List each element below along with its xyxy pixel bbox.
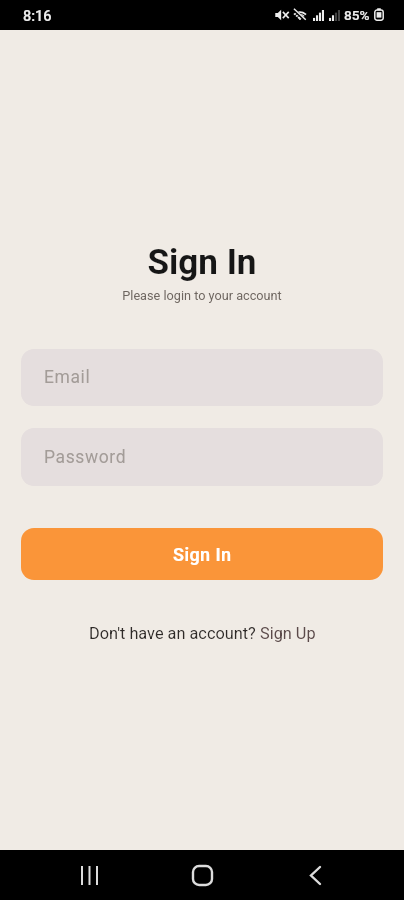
staticText: Please login to your account (0, 288, 404, 303)
staticText: Sign In (0, 242, 404, 283)
button[interactable]: Sign Up (260, 624, 316, 643)
staticText: Email (44, 367, 91, 388)
button[interactable]: Sign In (21, 528, 383, 580)
button[interactable]: Home (178, 851, 226, 899)
button[interactable]: Recent apps (65, 851, 113, 899)
staticText: Don't have an account? (89, 624, 260, 643)
staticText: Sign Up (260, 624, 316, 643)
button[interactable]: Email (21, 349, 383, 406)
button[interactable]: Back (291, 851, 339, 899)
staticText: Sign In (173, 544, 232, 565)
staticText: 85% (344, 7, 370, 23)
button[interactable]: Password (21, 428, 383, 486)
staticText: 8:16 (23, 8, 52, 25)
staticText: Password (44, 447, 127, 468)
